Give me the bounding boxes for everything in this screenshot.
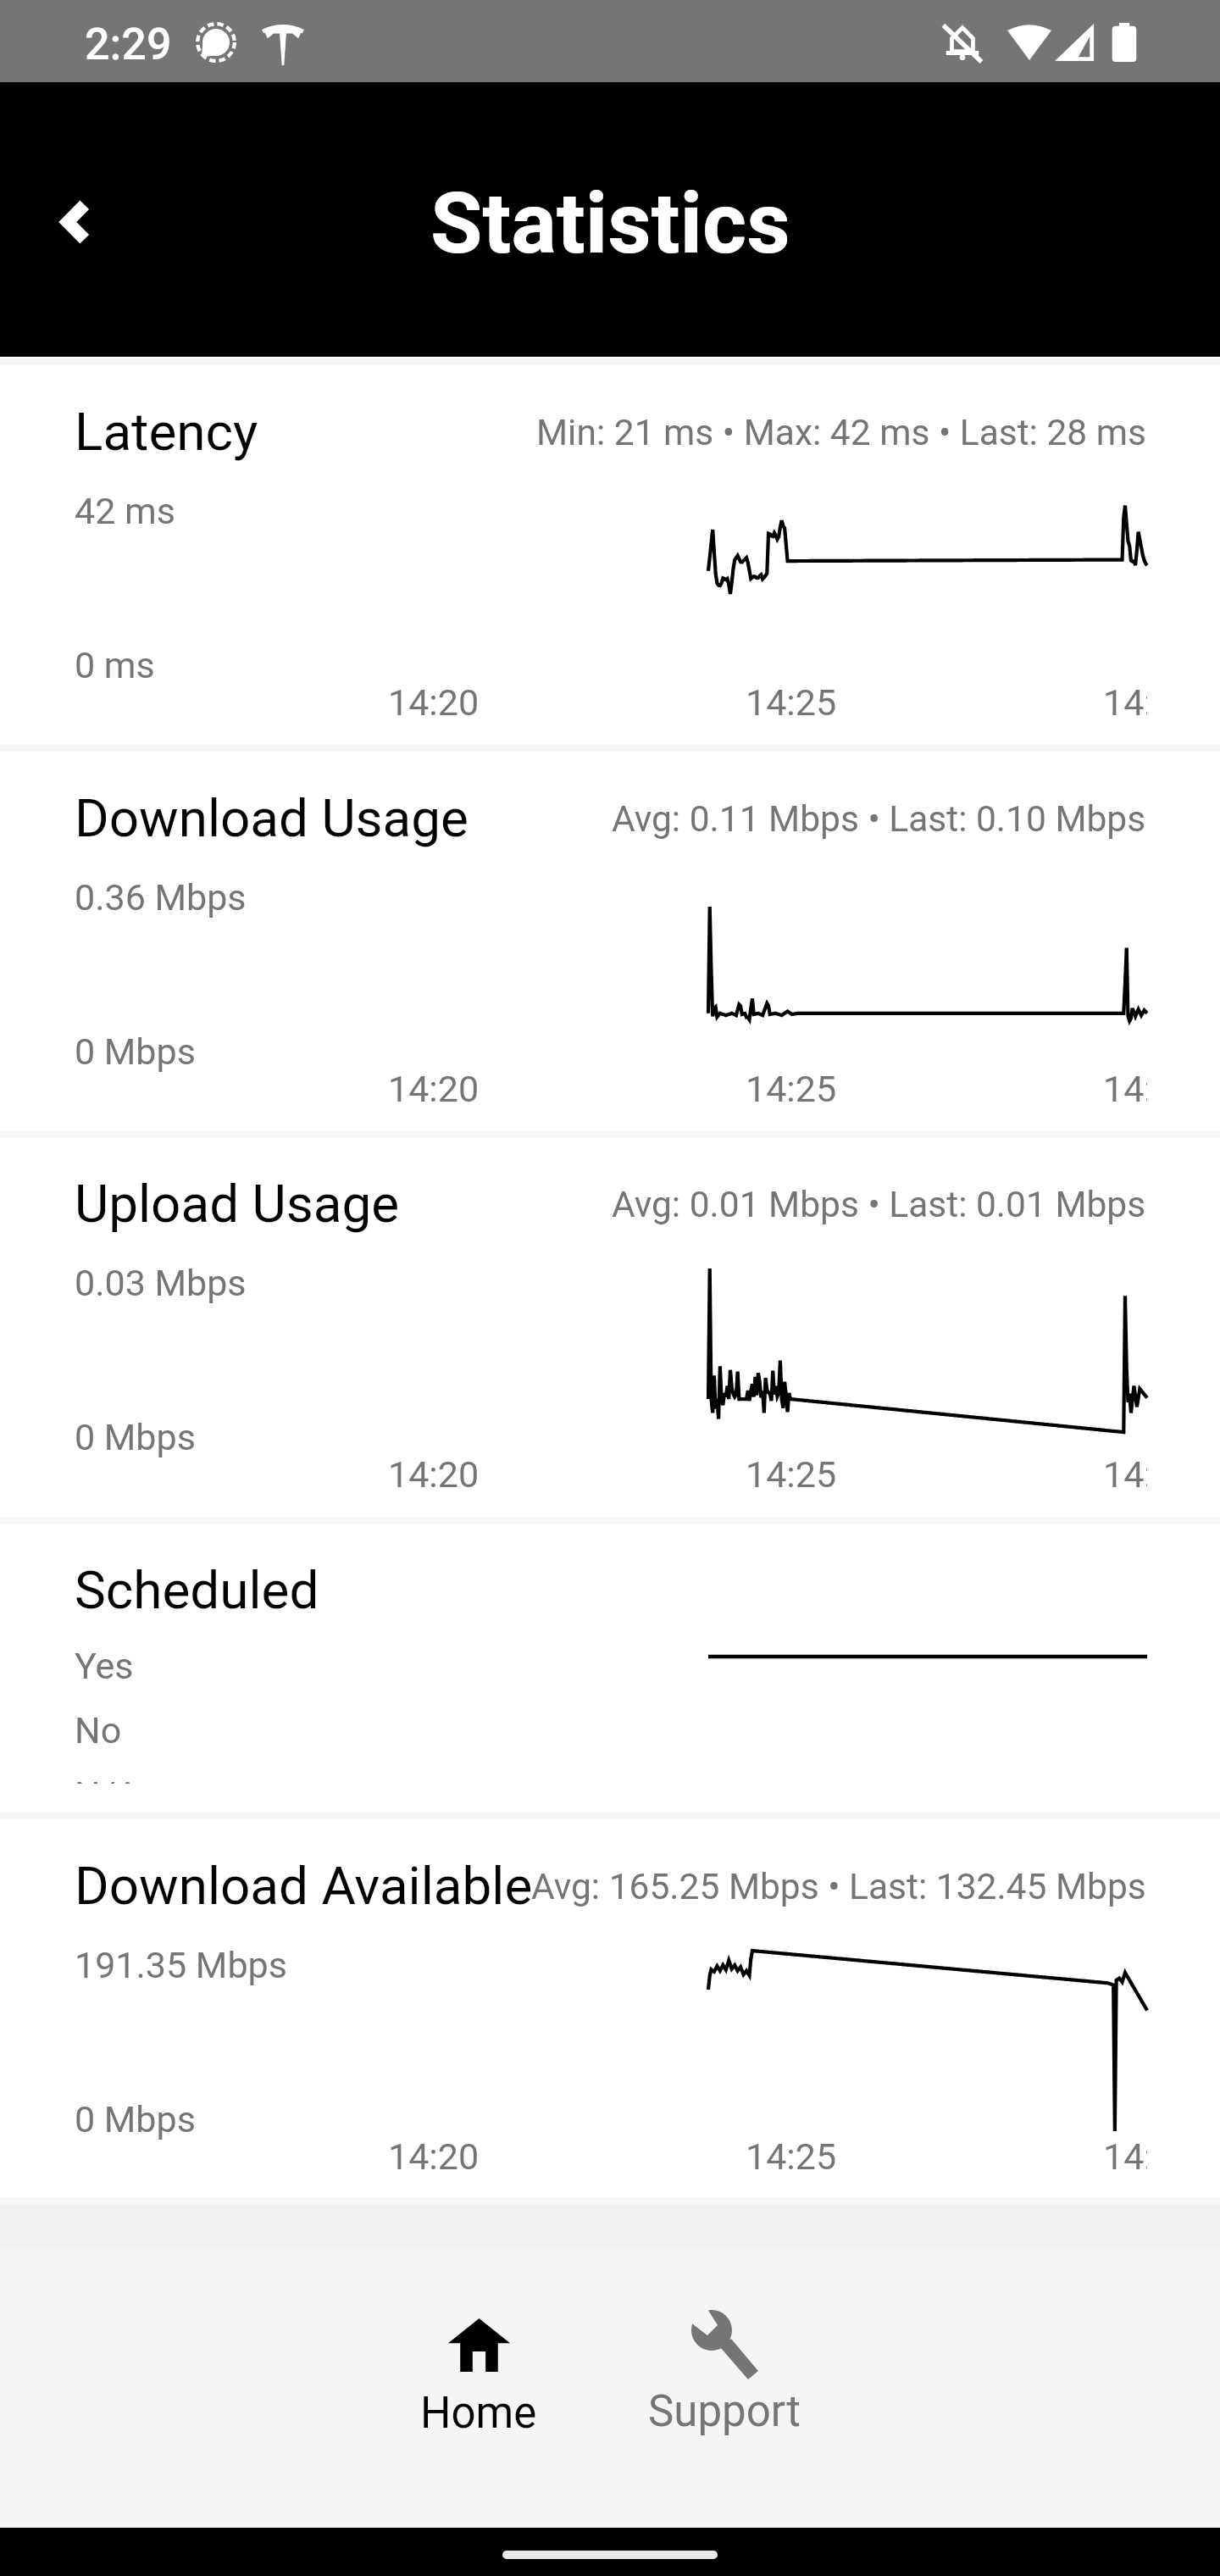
staticText: Avg: 0.11 Mbps • Last: 0.10 Mbps xyxy=(612,798,1146,841)
staticText: 0 ms xyxy=(75,644,155,686)
staticText: 14:25 xyxy=(746,681,837,724)
staticText: 0 Mbps xyxy=(75,2098,196,2140)
button[interactable]: Download Usage xyxy=(0,752,1220,1130)
staticText: Min: 21 ms • Max: 42 ms • Last: 28 ms xyxy=(536,412,1146,454)
staticText: 14:30 xyxy=(1103,1453,1147,1496)
button[interactable]: Support xyxy=(597,2249,851,2528)
staticText: 191.35 Mbps xyxy=(75,1944,287,1986)
staticText: 14:20 xyxy=(388,681,480,724)
button[interactable]: Scheduled xyxy=(0,1524,1220,1813)
button[interactable]: Upload Usage xyxy=(0,1137,1220,1517)
button[interactable]: Download Available xyxy=(0,1819,1220,2198)
staticText: Statistics xyxy=(430,174,790,273)
button[interactable]: Back xyxy=(9,159,138,288)
staticText: No xyxy=(75,1709,122,1752)
staticText: 0.36 Mbps xyxy=(75,876,247,919)
staticText: Avg: 165.25 Mbps • Last: 132.45 Mbps xyxy=(531,1866,1146,1908)
staticText: 14:20 xyxy=(388,1453,480,1496)
staticText: Download Usage xyxy=(75,787,469,849)
staticText: Home xyxy=(420,2388,537,2439)
staticText: 14:30 xyxy=(1103,2135,1147,2178)
staticText: 14:30 xyxy=(1103,681,1147,724)
staticText: 14:20 xyxy=(388,1068,480,1110)
staticText: 0 Mbps xyxy=(75,1416,196,1458)
staticText: Yes xyxy=(75,1645,134,1687)
staticText: Download Available xyxy=(75,1855,533,1917)
staticText: Latency xyxy=(75,401,258,463)
staticText: Avg: 0.01 Mbps • Last: 0.01 Mbps xyxy=(612,1184,1146,1226)
staticText: Scheduled xyxy=(75,1559,319,1621)
staticText: N/A xyxy=(75,1774,140,1784)
staticText: 2:29 xyxy=(85,19,172,70)
staticText: Support xyxy=(648,2386,801,2437)
staticText: 14:30 xyxy=(1103,1068,1147,1110)
staticText: 14:20 xyxy=(388,2135,480,2178)
staticText: 14:25 xyxy=(746,1453,837,1496)
staticText: 0.03 Mbps xyxy=(75,1262,247,1304)
staticText: 14:25 xyxy=(746,2135,837,2178)
button[interactable]: Home xyxy=(352,2249,606,2528)
button[interactable]: Latency xyxy=(0,365,1220,745)
staticText: 0 Mbps xyxy=(75,1030,196,1073)
staticText: 14:25 xyxy=(746,1068,837,1110)
staticText: 42 ms xyxy=(75,490,175,532)
staticText: Upload Usage xyxy=(75,1173,400,1235)
